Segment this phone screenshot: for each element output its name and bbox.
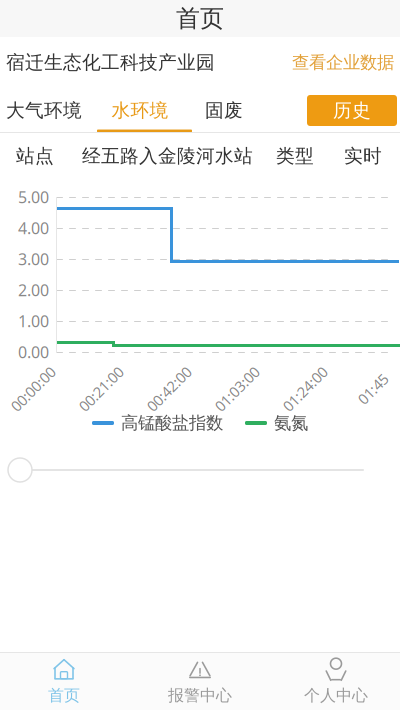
staticText: 00:21:00 — [73, 379, 129, 399]
button[interactable]: 水环境 — [92, 88, 188, 132]
staticText: 首页 — [48, 686, 80, 705]
button[interactable]: 固废 — [188, 88, 260, 132]
staticText: 01:03:00 — [209, 379, 265, 399]
staticText: 5.00 — [18, 186, 49, 208]
staticText: 固废 — [205, 99, 243, 122]
staticText: 历史 — [333, 99, 371, 122]
staticText: 报警中心 — [168, 686, 232, 705]
staticText: 4.00 — [18, 217, 49, 239]
staticText: 大气环境 — [6, 99, 82, 122]
button[interactable]: 个人中心 — [268, 653, 400, 710]
staticText: 00:42:00 — [141, 379, 197, 399]
staticText: 首页 — [176, 4, 224, 33]
staticText: 个人中心 — [304, 686, 368, 705]
button[interactable]: 报警中心 — [132, 653, 268, 710]
staticText: 水环境 — [111, 99, 168, 122]
staticText: 01:24:00 — [277, 379, 333, 399]
staticText: 0.00 — [18, 341, 49, 363]
button[interactable]: 首页 — [0, 653, 132, 710]
staticText: 站点 — [16, 144, 54, 167]
staticText: 01:45 — [355, 379, 391, 399]
staticText: 类型 — [276, 144, 314, 167]
staticText: 高锰酸盐指数 — [121, 412, 223, 434]
staticText: 氨氮 — [274, 412, 308, 434]
button[interactable]: 实时 — [314, 144, 400, 167]
staticText: 1.00 — [18, 310, 49, 332]
button[interactable]: 历史 — [307, 95, 397, 126]
staticText: 3.00 — [18, 248, 49, 270]
button[interactable]: 经五路入金陵河水站 — [54, 144, 253, 167]
staticText: 2.00 — [18, 279, 49, 301]
staticText: 经五路入金陵河水站 — [82, 144, 253, 167]
staticText: 实时 — [344, 144, 382, 167]
staticText: 查看企业数据 — [292, 52, 394, 73]
staticText: 00:00:00 — [5, 379, 61, 399]
button[interactable]: 时间范围滑块 — [8, 458, 32, 482]
staticText: 宿迁生态化工科技产业园 — [6, 51, 215, 74]
button[interactable]: 查看企业数据 — [292, 52, 394, 73]
button[interactable]: 大气环境 — [0, 88, 92, 132]
